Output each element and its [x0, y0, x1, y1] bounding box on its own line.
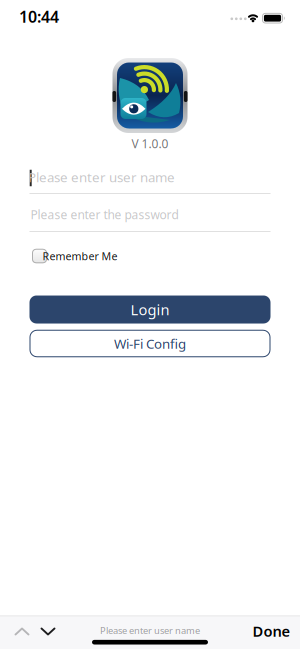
- staticText: 10:44: [19, 6, 59, 27]
- staticText: Please enter the password: [30, 206, 178, 222]
- button[interactable]: Please enter user name: [0, 158, 300, 198]
- button[interactable]: Please enter the password: [0, 195, 300, 235]
- staticText: Remember Me: [42, 249, 117, 263]
- button[interactable]: Previous field: [11, 620, 33, 642]
- button[interactable]: Remember Me: [0, 240, 120, 272]
- button[interactable]: Next field: [37, 620, 59, 642]
- staticText: Wi-Fi Config: [114, 335, 186, 352]
- staticText: Login: [130, 300, 169, 319]
- button[interactable]: Wi-Fi Config: [29, 330, 270, 357]
- staticText: Please enter user name: [100, 624, 200, 637]
- staticText: Please enter user name: [28, 168, 175, 186]
- staticText: V 1.0.0: [131, 135, 168, 151]
- button[interactable]: Login: [29, 295, 270, 323]
- button[interactable]: Done: [246, 618, 296, 644]
- staticText: Done: [252, 621, 290, 641]
